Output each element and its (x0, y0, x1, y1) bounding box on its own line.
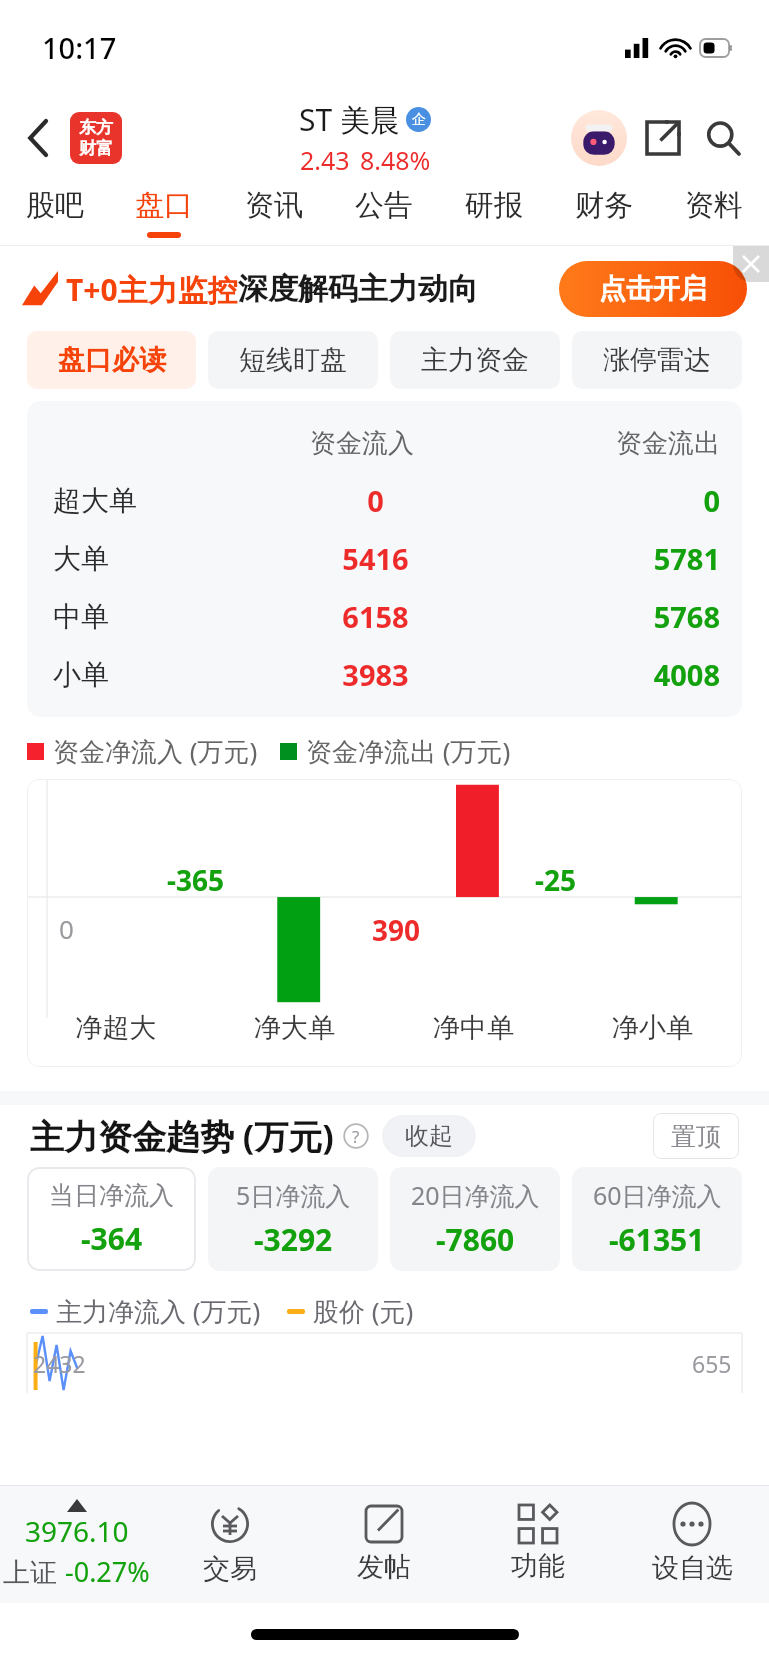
button[interactable]: 交易 (153, 1485, 307, 1603)
staticText: 资金净流入 (万元) (53, 733, 258, 769)
button[interactable]: 收起 (382, 1115, 476, 1157)
staticText: 20日净流入 (411, 1178, 540, 1212)
staticText: 研报 (465, 187, 523, 224)
staticText: 2432 (33, 1348, 86, 1379)
button[interactable]: 点击开启 (559, 261, 747, 317)
staticText: 390 (372, 911, 421, 949)
button[interactable]: 公告 (329, 180, 439, 238)
staticText: 发帖 (357, 1550, 411, 1584)
button[interactable]: Close (733, 246, 769, 282)
staticText: 5781 (483, 539, 720, 578)
staticText: 3983 (268, 655, 483, 694)
staticText: 净超大 (27, 1011, 205, 1045)
button[interactable]: East Money (70, 112, 122, 164)
staticText: 8.48% (360, 143, 431, 177)
staticText: T+0主力监控 (66, 269, 238, 310)
staticText: 股价 (元) (313, 1293, 414, 1329)
button[interactable]: 发帖 (307, 1485, 461, 1603)
button[interactable]: 置顶 (653, 1113, 739, 1159)
staticText: 短线盯盘 (239, 343, 347, 377)
staticText: 深度解码主力动向 (238, 270, 478, 308)
staticText: 当日净流入 (49, 1180, 174, 1211)
staticText: 655 (692, 1348, 732, 1379)
button[interactable]: 功能 (461, 1485, 615, 1603)
staticText: 2.43 (300, 143, 350, 177)
staticText: 净大单 (205, 1011, 384, 1045)
staticText: 0 (268, 481, 483, 520)
staticText: -364 (81, 1218, 143, 1259)
staticText: ST 美晨 (299, 99, 400, 140)
button[interactable]: 股吧 (0, 180, 109, 238)
button[interactable]: 短线盯盘 (208, 331, 378, 389)
staticText: 净小单 (563, 1011, 742, 1045)
button[interactable]: Search (695, 110, 751, 166)
staticText: -365 (167, 861, 225, 899)
staticText: 上证 (3, 1553, 65, 1590)
button[interactable]: 设自选 (615, 1485, 769, 1603)
staticText: 净中单 (384, 1011, 563, 1045)
staticText: -0.27% (65, 1553, 150, 1590)
staticText: 资讯 (245, 187, 303, 224)
staticText: -25 (535, 861, 576, 899)
staticText: -7860 (436, 1219, 515, 1260)
staticText: 主力资金趋势 (万元) (30, 1113, 334, 1159)
staticText: 5768 (483, 597, 720, 636)
staticText: 大单 (53, 541, 268, 576)
button[interactable]: 资讯 (219, 180, 329, 238)
staticText: 资料 (685, 187, 743, 224)
button[interactable]: 当日净流入 (27, 1167, 196, 1271)
staticText: 3976.10 (25, 1512, 129, 1550)
staticText: 公告 (355, 187, 413, 224)
button[interactable]: 涨停雷达 (572, 331, 742, 389)
staticText: 盘口必读 (58, 343, 166, 377)
button[interactable]: Share (635, 110, 691, 166)
staticText: 小单 (53, 657, 268, 692)
staticText: 资金流出 (474, 427, 720, 460)
staticText: 置顶 (671, 1121, 721, 1152)
button[interactable]: 20日净流入 (390, 1167, 560, 1271)
button[interactable]: 财务 (549, 180, 659, 238)
staticText: 0 (483, 481, 720, 520)
staticText: 5416 (268, 539, 483, 578)
button[interactable]: Back (14, 113, 64, 163)
staticText: 60日净流入 (593, 1178, 722, 1212)
staticText: 中单 (53, 599, 268, 634)
button[interactable]: 盘口 (109, 180, 219, 238)
button[interactable]: 研报 (439, 180, 549, 238)
staticText: 财务 (575, 187, 633, 224)
staticText: 点击开启 (599, 272, 707, 306)
button[interactable]: AI assistant (569, 108, 629, 168)
button[interactable]: 5日净流入 (208, 1167, 378, 1271)
button[interactable]: 资料 (659, 180, 769, 238)
staticText: 0 (59, 911, 74, 946)
staticText: 设自选 (652, 1551, 733, 1585)
staticText: 涨停雷达 (603, 343, 711, 377)
staticText: 企 (412, 111, 426, 129)
staticText: -3292 (254, 1219, 333, 1260)
staticText: 5日净流入 (236, 1178, 351, 1212)
button[interactable]: 盘口必读 (27, 331, 196, 389)
staticText: -61351 (609, 1219, 705, 1260)
staticText: 财富 (79, 138, 113, 159)
staticText: 主力净流入 (万元) (56, 1293, 261, 1329)
staticText: 资金净流出 (万元) (306, 733, 511, 769)
staticText: 6158 (268, 597, 483, 636)
staticText: 4008 (483, 655, 720, 694)
staticText: 超大单 (53, 483, 268, 518)
staticText: 主力资金 (421, 343, 529, 377)
button[interactable]: 3976.10 (0, 1485, 153, 1603)
staticText: 交易 (203, 1552, 257, 1586)
button[interactable]: Help (342, 1122, 370, 1150)
staticText: 盘口 (135, 187, 193, 224)
button[interactable]: 60日净流入 (572, 1167, 742, 1271)
staticText: 功能 (511, 1549, 565, 1583)
staticText: 收起 (405, 1121, 453, 1151)
button[interactable]: 主力资金 (390, 331, 560, 389)
staticText: 资金流入 (250, 427, 474, 460)
staticText: 股吧 (26, 187, 84, 224)
staticText: ? (352, 1125, 360, 1148)
staticText: 东方 (79, 117, 113, 138)
staticText: 10:17 (42, 28, 117, 67)
